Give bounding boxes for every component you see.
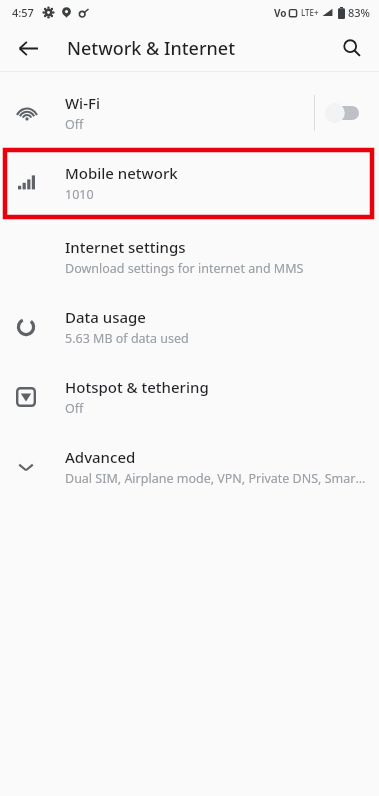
staticText: Internet settings (65, 237, 186, 257)
staticText: Download settings for internet and MMS (65, 260, 304, 277)
button[interactable]: Back (8, 28, 48, 68)
button[interactable]: Mobile network (0, 148, 379, 218)
button[interactable]: Hotspot & tethering (0, 362, 379, 432)
button[interactable]: Wi-Fi toggle, off (315, 91, 367, 135)
staticText: Off (65, 116, 84, 133)
staticText: 1010 (65, 186, 94, 203)
button[interactable]: Internet settings (0, 222, 379, 292)
staticText: Mobile network (65, 163, 178, 183)
button[interactable]: Wi-Fi (0, 78, 379, 148)
staticText: Advanced (65, 447, 136, 467)
button[interactable]: Advanced (0, 432, 379, 502)
staticText: 4:57 (12, 5, 34, 20)
staticText: 83% (348, 5, 370, 20)
button[interactable]: Search (332, 28, 372, 68)
staticText: Hotspot & tethering (65, 377, 209, 397)
button[interactable]: Data usage (0, 292, 379, 362)
staticText: Off (65, 400, 84, 417)
staticText: Dual SIM, Airplane mode, VPN, Private DN… (65, 470, 367, 487)
staticText: LTE+ (301, 7, 319, 18)
staticText: Network & Internet (67, 36, 236, 61)
staticText: Data usage (65, 307, 146, 327)
staticText: Vo (274, 6, 287, 20)
staticText: Wi-Fi (65, 93, 100, 113)
staticText: 5.63 MB of data used (65, 330, 189, 347)
